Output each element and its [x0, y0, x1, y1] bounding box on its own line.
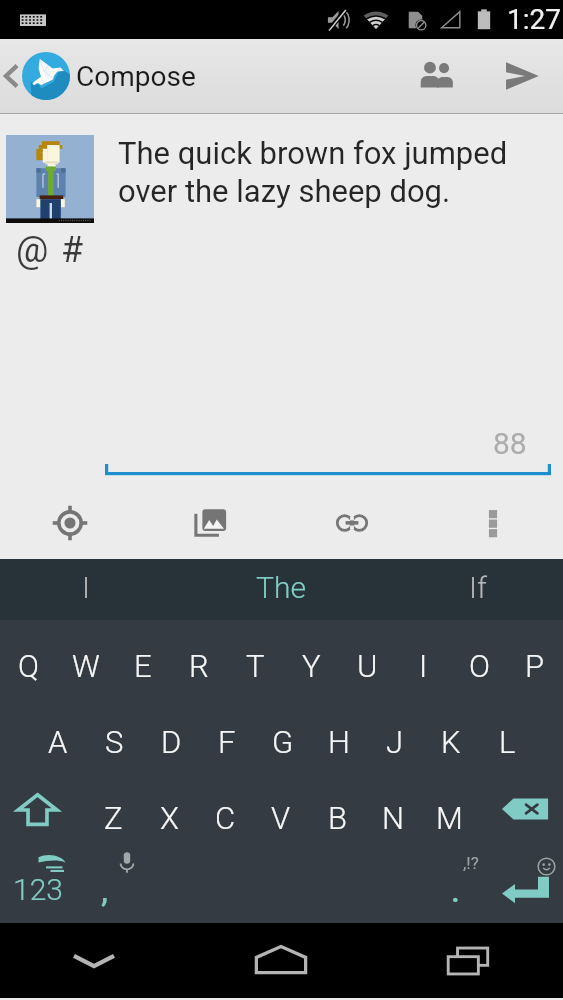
staticText: W — [72, 648, 100, 684]
button[interactable]: A — [29, 697, 86, 773]
button[interactable]: E — [114, 620, 171, 697]
button[interactable]: Enter — [476, 848, 563, 923]
button[interactable]: D — [143, 697, 199, 773]
button[interactable]: Home — [187, 923, 375, 998]
staticText: . — [451, 872, 460, 910]
button[interactable]: If — [375, 559, 563, 620]
staticText: The — [256, 570, 306, 605]
staticText: P — [525, 648, 545, 684]
button[interactable]: Backspace — [477, 773, 563, 848]
staticText: T — [246, 648, 265, 684]
button[interactable]: Shift — [0, 773, 85, 848]
button[interactable]: J — [367, 697, 423, 773]
button[interactable]: Symbols — [0, 848, 88, 923]
staticText: I — [82, 570, 90, 605]
button[interactable]: Period — [420, 848, 476, 923]
button[interactable]: L — [479, 697, 535, 773]
button[interactable]: S — [86, 697, 143, 773]
button[interactable]: T — [227, 620, 283, 697]
button[interactable]: Comma — [88, 848, 144, 923]
button[interactable]: Recipients — [393, 39, 481, 113]
button[interactable]: O — [451, 620, 507, 697]
button[interactable]: # — [55, 227, 90, 273]
staticText: O — [469, 648, 490, 684]
button[interactable]: C — [197, 773, 253, 848]
button[interactable]: The — [187, 559, 375, 620]
staticText: 88 — [493, 426, 527, 461]
staticText: The quick brown fox jumped over the lazy… — [118, 135, 548, 210]
button[interactable]: M — [421, 773, 477, 848]
staticText: , — [101, 872, 109, 910]
staticText: V — [271, 800, 291, 836]
button[interactable]: U — [339, 620, 395, 697]
staticText: N — [382, 800, 405, 836]
staticText: E — [134, 648, 152, 684]
button[interactable]: More options — [422, 486, 563, 559]
button[interactable]: G — [255, 697, 311, 773]
button[interactable]: N — [365, 773, 421, 848]
staticText: S — [105, 724, 124, 760]
button[interactable]: W — [57, 620, 114, 697]
button[interactable]: X — [141, 773, 197, 848]
button[interactable]: Y — [283, 620, 339, 697]
staticText: F — [218, 724, 236, 760]
button[interactable]: Link — [281, 486, 422, 559]
staticText: H — [328, 724, 350, 760]
staticText: K — [441, 724, 461, 760]
staticText: Q — [18, 648, 39, 684]
staticText: If — [469, 570, 487, 605]
staticText: R — [189, 648, 209, 684]
staticText: Z — [104, 800, 123, 836]
button[interactable]: Q — [0, 620, 57, 697]
staticText: M — [436, 800, 463, 836]
button[interactable]: I — [395, 620, 451, 697]
button[interactable]: Photos — [140, 486, 281, 559]
staticText: L — [499, 724, 516, 760]
staticText: X — [160, 800, 179, 836]
button[interactable]: P — [507, 620, 563, 697]
staticText: # — [61, 229, 84, 271]
button[interactable]: I — [0, 559, 187, 620]
button[interactable]: F — [199, 697, 255, 773]
button[interactable]: Z — [85, 773, 141, 848]
staticText: G — [272, 724, 294, 760]
staticText: 123 — [13, 872, 63, 907]
button[interactable]: @ — [10, 227, 55, 273]
staticText: J — [386, 724, 404, 760]
staticText: Compose — [76, 60, 196, 93]
button[interactable]: Up — [0, 52, 202, 100]
button[interactable]: B — [309, 773, 365, 848]
staticText: D — [161, 724, 182, 760]
button[interactable]: K — [423, 697, 479, 773]
button[interactable]: Location — [0, 486, 140, 559]
staticText: C — [215, 800, 236, 836]
button[interactable]: V — [253, 773, 309, 848]
button[interactable]: Recent apps — [375, 923, 563, 998]
button[interactable]: H — [311, 697, 367, 773]
staticText: 1:27 — [507, 3, 561, 36]
staticText: A — [48, 724, 68, 760]
staticText: @ — [16, 229, 49, 271]
button[interactable]: R — [171, 620, 227, 697]
staticText: I — [419, 648, 428, 684]
button[interactable]: Send — [481, 39, 563, 113]
staticText: Y — [302, 648, 321, 684]
other: Up — [0, 63, 20, 89]
staticText: B — [328, 800, 347, 836]
button[interactable]: Hide keyboard — [0, 923, 187, 998]
staticText: ,!? — [463, 853, 479, 873]
staticText: U — [357, 648, 378, 684]
